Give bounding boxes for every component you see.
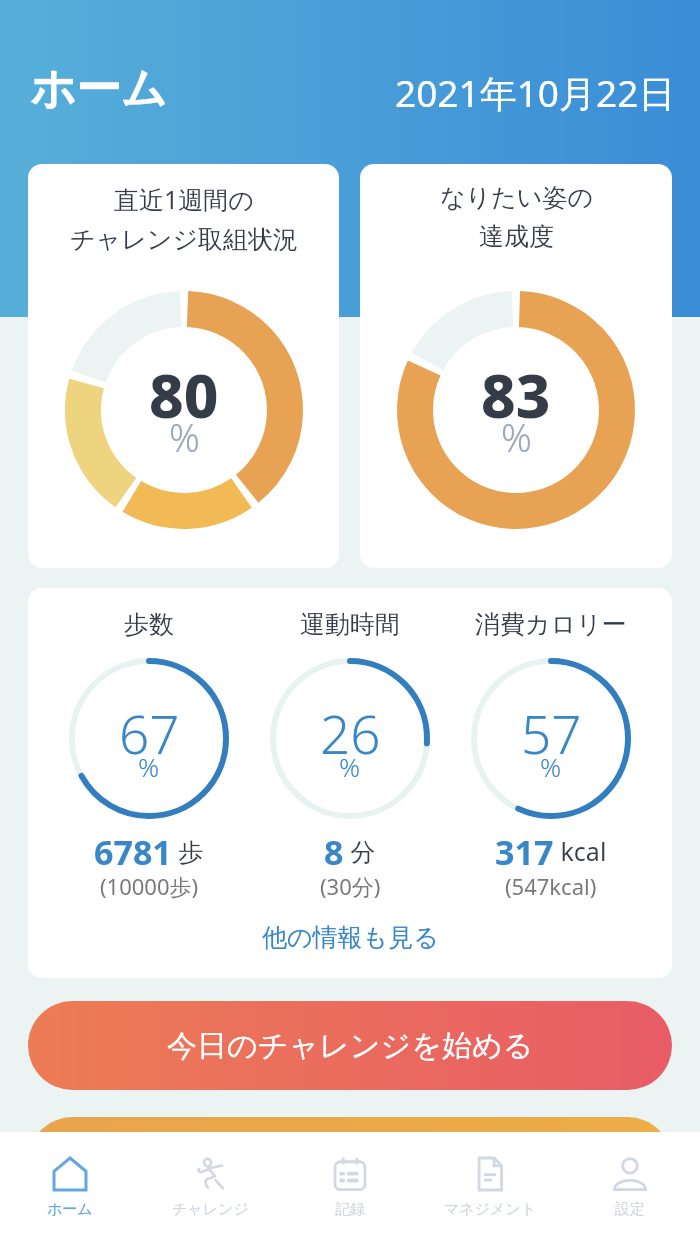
button[interactable]: マネジメント: [420, 1132, 560, 1244]
staticText: 今日のチャレンジを始める: [167, 1027, 534, 1065]
button[interactable]: 直近1週間の: [28, 164, 339, 568]
staticText: 分: [344, 834, 376, 868]
staticText: 67: [119, 697, 180, 769]
staticText: 8: [324, 829, 344, 875]
staticText: なりたい姿の: [440, 182, 593, 213]
staticText: %: [138, 749, 160, 784]
staticText: 26: [320, 697, 381, 769]
staticText: 57: [521, 697, 582, 769]
staticText: ホーム: [30, 61, 168, 118]
staticText: (30分): [320, 871, 381, 901]
staticText: %: [169, 411, 200, 463]
staticText: 歩数: [124, 609, 174, 640]
button[interactable]: チャレンジ: [140, 1132, 280, 1244]
staticText: 2021年10月22日: [395, 67, 676, 118]
button[interactable]: 他の情報も見る: [248, 916, 453, 959]
staticText: 6781: [94, 829, 172, 875]
staticText: 317: [495, 829, 554, 875]
staticText: %: [540, 749, 562, 784]
staticText: kcal: [554, 834, 607, 868]
button[interactable]: [28, 1117, 672, 1206]
button[interactable]: 今日のチャレンジを始める: [28, 1001, 672, 1090]
staticText: 運動時間: [300, 609, 400, 640]
staticText: %: [501, 411, 532, 463]
staticText: 他の情報も見る: [262, 922, 439, 953]
staticText: 直近1週間の: [114, 182, 254, 216]
staticText: (547kcal): [505, 871, 597, 901]
button[interactable]: ホーム: [0, 1132, 140, 1244]
staticText: %: [339, 749, 361, 784]
staticText: ホーム: [47, 1200, 93, 1219]
staticText: マネジメント: [444, 1200, 537, 1219]
staticText: 歩: [172, 834, 204, 868]
button[interactable]: 設定: [560, 1132, 700, 1244]
staticText: 消費カロリー: [475, 609, 627, 640]
staticText: 記録: [335, 1200, 365, 1219]
staticText: 80: [149, 354, 219, 436]
staticText: 達成度: [479, 221, 554, 252]
staticText: (10000歩): [100, 871, 199, 901]
staticText: チャレンジ取組状況: [70, 224, 298, 255]
button[interactable]: なりたい姿の: [360, 164, 672, 568]
staticText: 83: [481, 354, 551, 436]
button[interactable]: 記録: [280, 1132, 420, 1244]
staticText: チャレンジ: [172, 1200, 249, 1219]
staticText: 設定: [615, 1200, 645, 1219]
